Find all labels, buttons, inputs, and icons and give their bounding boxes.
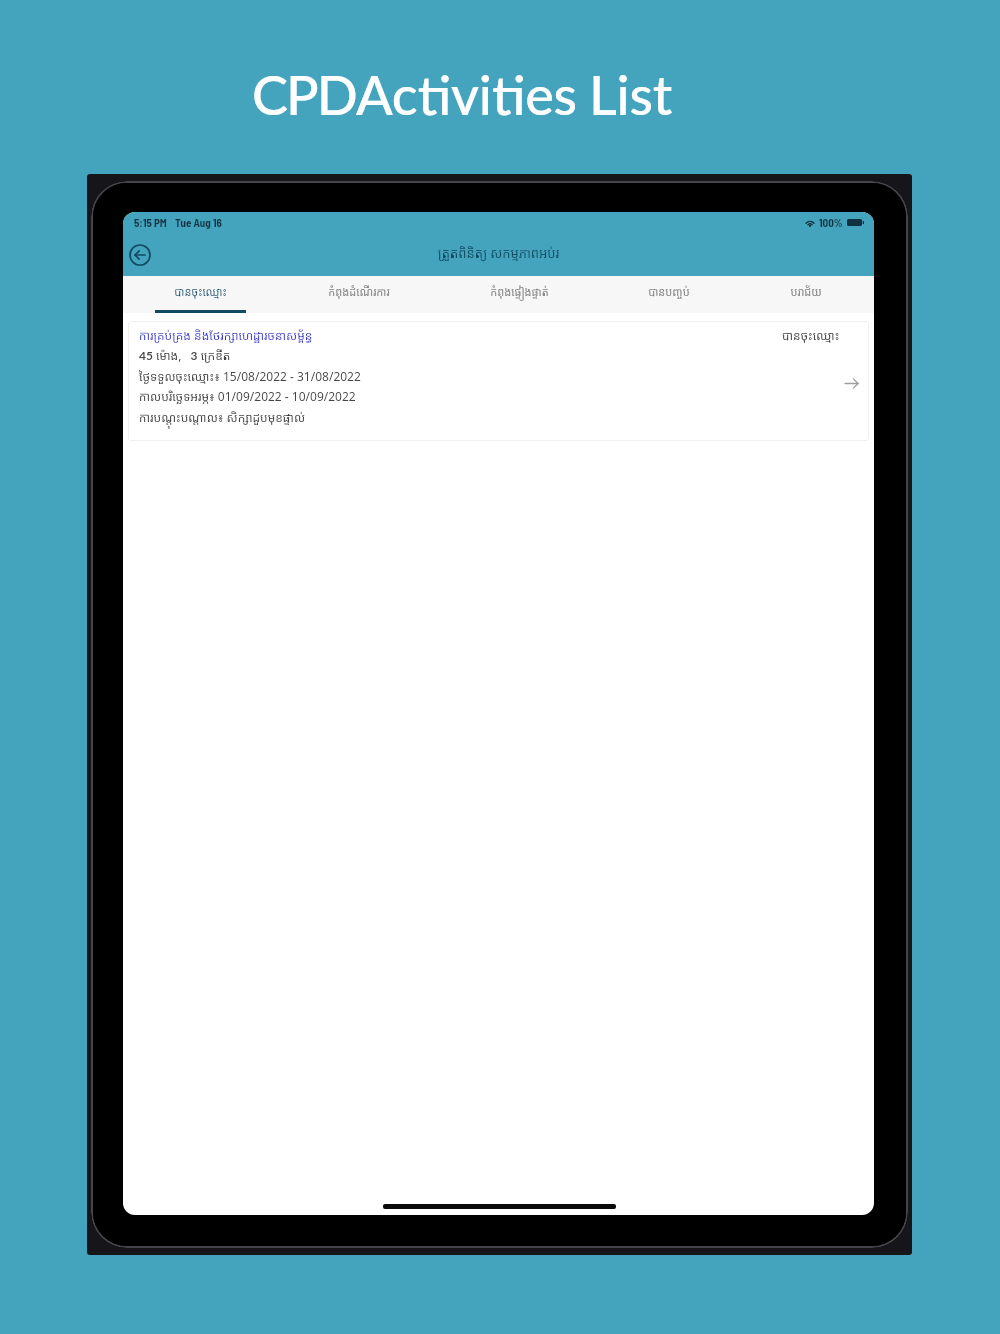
staticText: 45 ម៉ោង, 3 ក្រេឌីត [139,347,231,363]
staticText: CPD [252,62,357,127]
staticText: កំពុងផ្ទៀងផ្ទាត់ [490,284,549,299]
button[interactable]: ការគ្រប់គ្រង និងថែរក្សាហេដ្ឋារចនាសម្ព័ន្… [128,321,869,441]
staticText: ត្រួតពិនិត្យ សកម្មភាពអប់រ [438,244,560,262]
button[interactable]: បរាជ័យ [738,276,874,313]
button[interactable]: បានចុះឈ្មោះ [123,276,278,313]
staticText: បានចុះឈ្មោះ [174,284,227,299]
staticText: List [589,62,673,127]
staticText: 5:15 PM [134,216,167,229]
staticText: Activities [356,62,577,127]
staticText: កាលបរិច្ឆេទអរម្ភ៖ 01/09/2022 - 10/09/202… [139,388,356,404]
button[interactable]: កំពុងផ្ទៀងផ្ទាត់ [442,276,597,313]
staticText: បានបញ្ចប់ [648,284,690,299]
staticText: បានចុះឈ្មោះ [782,327,840,343]
staticText: កំពុងដំណើរការ [328,284,390,299]
staticText: Tue Aug 16 [175,216,222,229]
staticText: 100% [819,216,843,229]
staticText: ការបណ្ដុះបណ្ដាល៖ សិក្សាដួបមុខផ្ទាល់ [139,409,306,425]
button[interactable]: បានបញ្ចប់ [597,276,741,313]
button[interactable]: Back [126,241,154,269]
staticText: ការគ្រប់គ្រង និងថែរក្សាហេដ្ឋារចនាសម្ព័ន្… [139,327,313,343]
button[interactable]: កំពុងដំណើរការ [279,276,439,313]
staticText: ថ្ងៃទទួលចុះឈ្មោះ៖ 15/08/2022 - 31/08/202… [139,368,361,384]
staticText: បរាជ័យ [790,284,822,299]
